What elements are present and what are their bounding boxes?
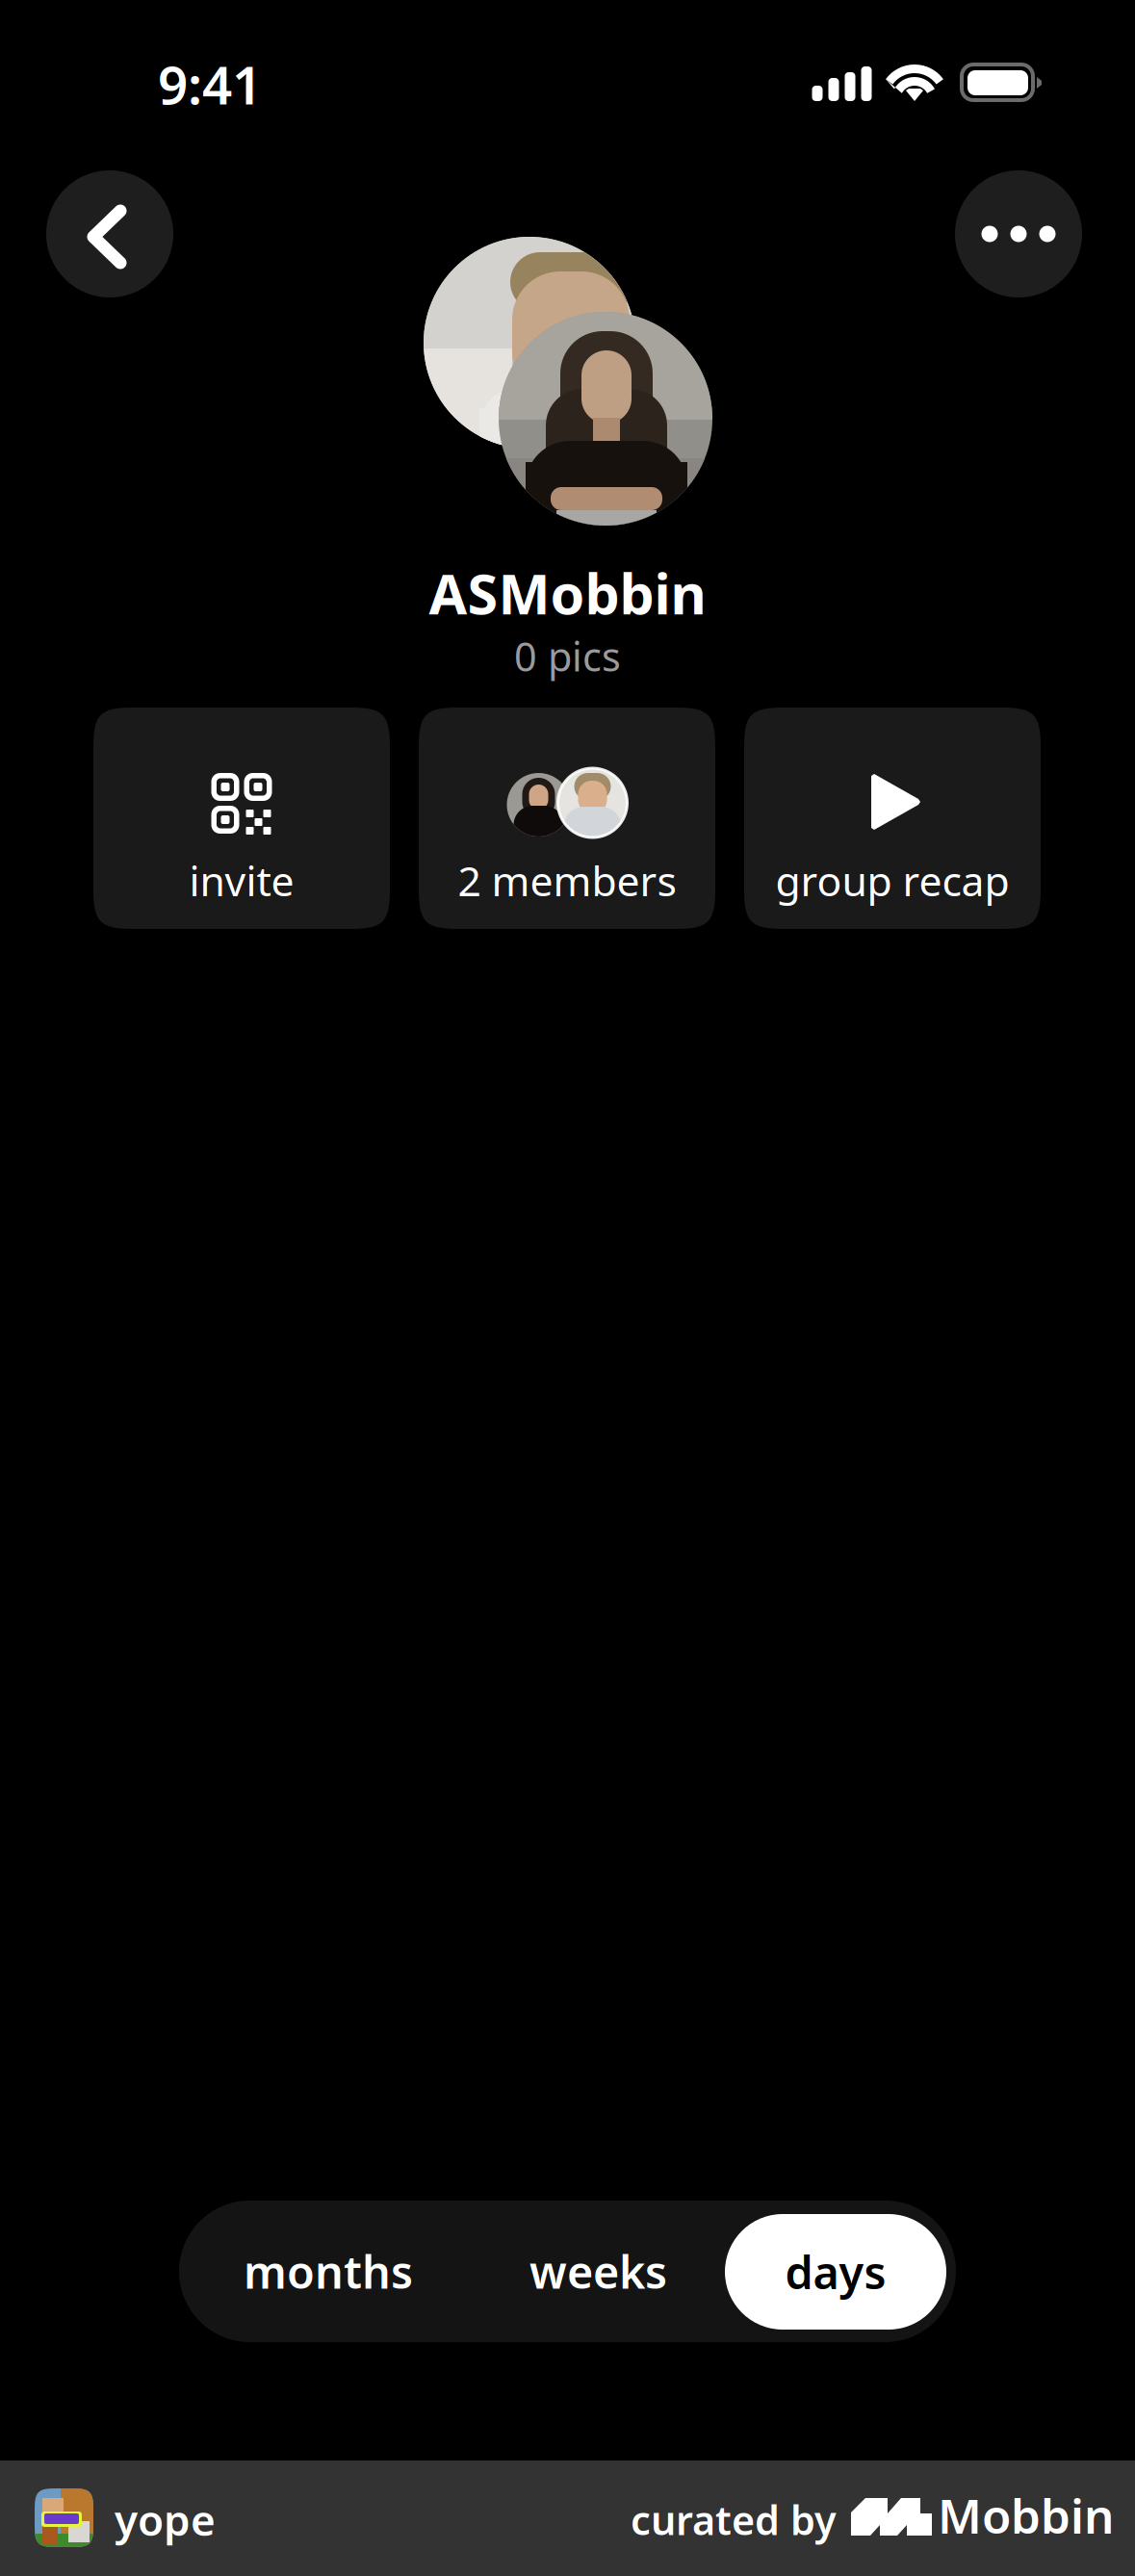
button[interactable]: invite [93, 708, 390, 929]
staticText: 9:41 [158, 49, 262, 119]
staticText: 2 members [458, 853, 676, 907]
button[interactable]: Back [46, 170, 173, 297]
staticText: 0 pics [514, 630, 621, 682]
button[interactable]: group recap [744, 708, 1041, 929]
button[interactable]: months [205, 2201, 451, 2342]
staticText: months [244, 2241, 413, 2301]
staticText: curated by [631, 2493, 837, 2546]
button[interactable]: days [725, 2214, 946, 2330]
staticText: yope [115, 2491, 216, 2548]
button[interactable]: 2 members [419, 708, 715, 929]
button[interactable]: weeks [485, 2201, 711, 2342]
staticText: Mobbin [938, 2484, 1114, 2547]
button[interactable]: More options [955, 170, 1082, 297]
staticText: invite [189, 853, 294, 907]
staticText: days [785, 2242, 886, 2302]
staticText: weeks [529, 2241, 667, 2301]
staticText: group recap [775, 853, 1009, 907]
staticText: ASMobbin [429, 556, 706, 630]
